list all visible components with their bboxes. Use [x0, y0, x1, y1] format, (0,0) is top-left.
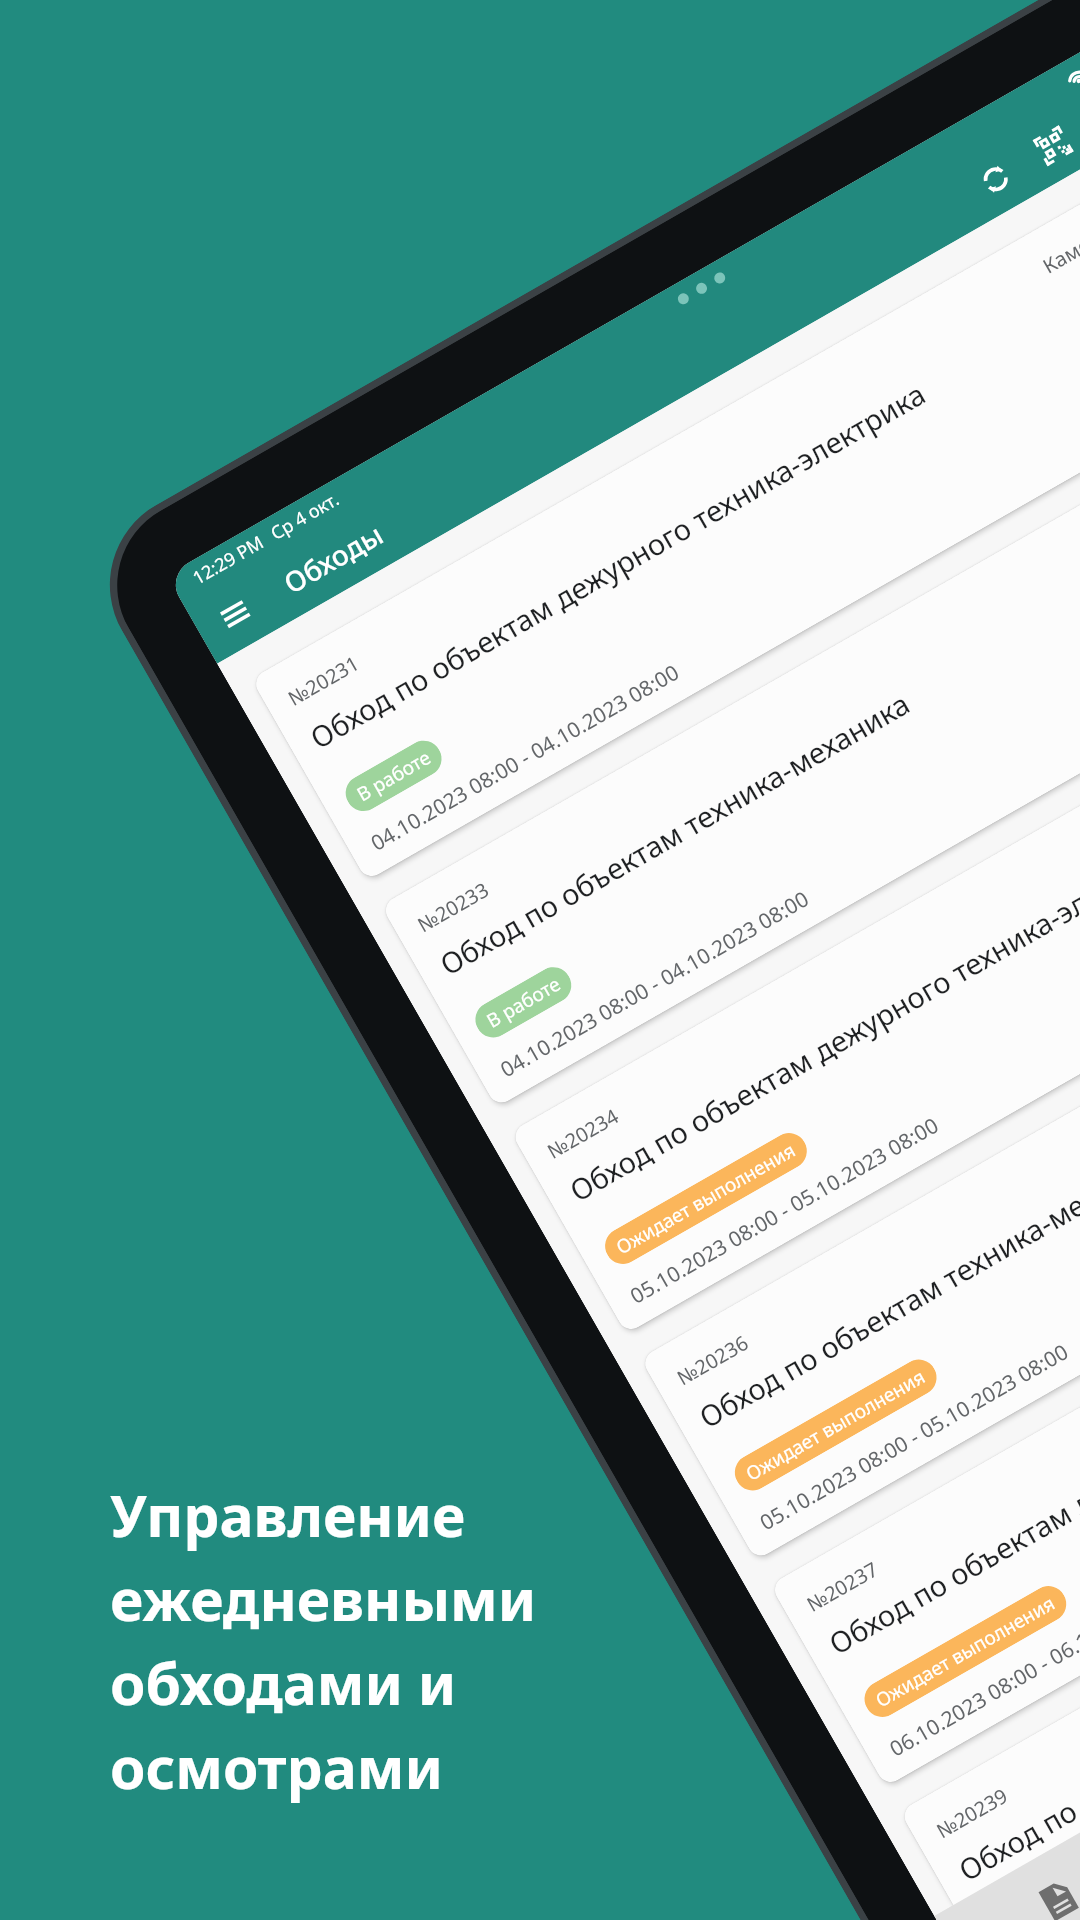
staticText: 04.10.2023 08:00 - 04.10.2023 08:00 — [495, 884, 814, 1084]
staticText: Обходы — [277, 515, 389, 601]
staticText: 12:29 PM — [188, 530, 268, 590]
button[interactable]: Reports — [1010, 1851, 1080, 1920]
staticText: Ожидает выполнения — [741, 1363, 930, 1487]
staticText: Ожидает выполнения — [998, 1812, 1080, 1920]
staticText: 05.10.2023 08:00 - 05.10.2023 08:00 — [625, 1111, 944, 1310]
staticText: 04.10.2023 08:00 - 04.10.2023 08:00 — [365, 658, 684, 857]
staticText: №20231 — [283, 649, 364, 712]
staticText: Ср 4 окт. — [266, 487, 343, 546]
button[interactable]: №20236 — [640, 809, 1080, 1560]
staticText: №20239 — [931, 1782, 1013, 1844]
staticText: В работе — [352, 744, 435, 807]
staticText: №20234 — [542, 1102, 623, 1165]
button[interactable]: More options — [1076, 77, 1080, 148]
button[interactable]: №20233 — [381, 356, 1080, 1107]
staticText: 06.10.2023 08:00 - 06.10.2023 08:00 — [884, 1564, 1080, 1763]
button[interactable]: №20234 — [510, 582, 1080, 1334]
staticText: Обход по объектам дежурного техника-элек… — [303, 374, 932, 757]
button[interactable]: №20239 — [900, 1262, 1080, 1920]
button[interactable]: Open navigation menu — [199, 579, 270, 650]
staticText: №20237 — [802, 1555, 883, 1618]
button[interactable]: Scan QR code — [1018, 110, 1080, 181]
staticText: Обход по объектам техника-механика — [951, 1589, 1080, 1889]
staticText: 05.10.2023 08:00 - 05.10.2023 08:00 — [755, 1337, 1074, 1537]
staticText: Обход по объектам дежурного техника-элек… — [562, 827, 1080, 1210]
staticText: Обход по объектам техника-механика — [432, 684, 916, 983]
button[interactable]: №20237 — [770, 1035, 1080, 1787]
button[interactable]: №20231 — [251, 129, 1080, 881]
staticText: Камера 1 — [1038, 211, 1080, 279]
staticText: Обход по объектам дежурного техника-элек… — [822, 1280, 1080, 1663]
staticText: В работе — [482, 971, 565, 1034]
button[interactable]: Refresh — [960, 144, 1031, 215]
staticText: №20233 — [413, 876, 494, 938]
staticText: №20236 — [672, 1329, 753, 1391]
staticText: Ожидает выполнения — [871, 1590, 1060, 1713]
staticText: Ожидает выполнения — [611, 1137, 800, 1260]
staticText: Управление ежедневными обходами и осмотр… — [110, 1476, 580, 1806]
staticText: Обход по объектам техника-механика — [692, 1137, 1080, 1436]
